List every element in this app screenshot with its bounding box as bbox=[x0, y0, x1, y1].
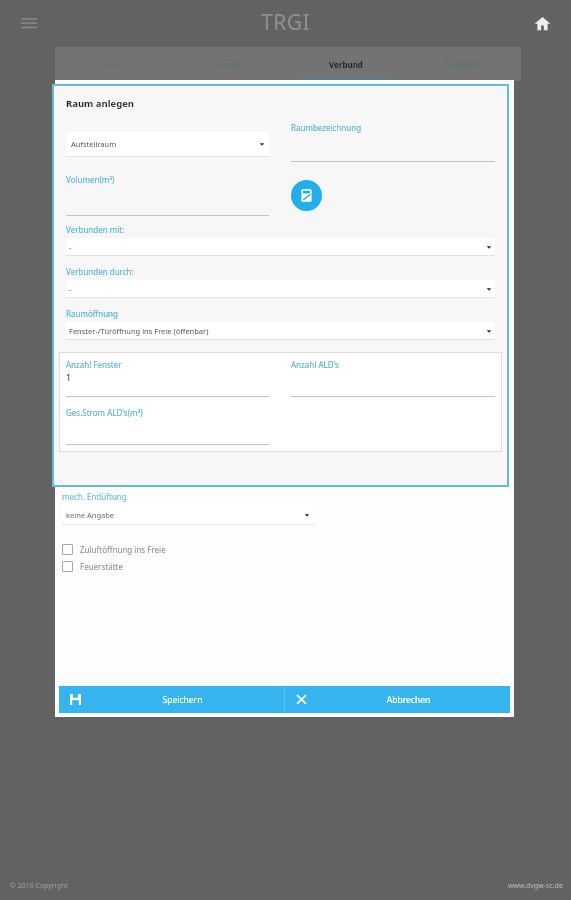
button[interactable]: Abbrechen bbox=[285, 686, 510, 713]
staticText: Raumöffnung bbox=[66, 308, 118, 319]
staticText: TRGI bbox=[261, 8, 311, 37]
staticText: Raum anlegen bbox=[66, 97, 135, 110]
button[interactable]: Ergebnis bbox=[404, 47, 521, 81]
button[interactable]: Verbund bbox=[287, 47, 404, 81]
staticText: Aufstellraum bbox=[71, 139, 117, 149]
button[interactable]: Feuerstätte bbox=[62, 560, 123, 573]
staticText: Feuerstätte bbox=[80, 561, 123, 572]
button[interactable]: Fenster-/Türöffnung ins Freie (öffenbar) bbox=[66, 322, 495, 339]
staticText: Verbunden durch: bbox=[66, 266, 134, 277]
staticText: Ergebnis bbox=[446, 59, 479, 70]
staticText: Ges.Strom ALD's(m³) bbox=[66, 407, 143, 418]
staticText: keine Angabe bbox=[66, 510, 115, 520]
staticText: Verbunden mit: bbox=[66, 224, 125, 235]
staticText: Anzahl ALD's bbox=[291, 359, 339, 370]
button[interactable]: Zuluftöffnung ins Freie bbox=[62, 543, 166, 556]
staticText: - bbox=[69, 284, 72, 294]
button[interactable]: Home bbox=[525, 6, 559, 40]
button[interactable]: - bbox=[66, 280, 495, 297]
staticText: © 2016 Copyright bbox=[10, 881, 68, 891]
staticText: Zuluftöffnung ins Freie bbox=[80, 544, 166, 555]
button[interactable]: keine Angabe bbox=[62, 505, 315, 524]
button[interactable]: Open navigation menu bbox=[12, 6, 46, 40]
staticText: Speichern bbox=[81, 694, 284, 706]
button[interactable]: Calculate volume bbox=[291, 180, 322, 211]
staticText: Verbund bbox=[329, 59, 363, 70]
button[interactable]: - bbox=[66, 238, 495, 255]
staticText: www.dvgw-sc.de bbox=[508, 881, 563, 891]
button[interactable]: Raum bbox=[171, 47, 287, 81]
staticText: Abbrechen bbox=[307, 694, 510, 706]
staticText: 1 bbox=[66, 372, 71, 384]
staticText: mech. Entlüftung bbox=[62, 491, 127, 502]
staticText: Fenster-/Türöffnung ins Freie (öffenbar) bbox=[69, 326, 209, 336]
staticText: - bbox=[69, 242, 72, 252]
staticText: Volumen(m³) bbox=[66, 174, 115, 185]
button[interactable]: Speichern bbox=[59, 686, 284, 713]
staticText: Raumbezeichnung bbox=[291, 122, 362, 133]
button[interactable]: Haus bbox=[55, 47, 171, 81]
staticText: Raum bbox=[218, 59, 240, 70]
button[interactable]: 1 bbox=[66, 372, 269, 396]
button[interactable]: Aufstellraum bbox=[66, 132, 269, 156]
staticText: Anzahl Fenster bbox=[66, 359, 122, 370]
staticText: Haus bbox=[103, 59, 123, 70]
